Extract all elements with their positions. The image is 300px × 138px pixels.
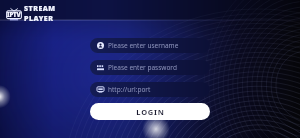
staticText: http://url:port [108,85,151,94]
button[interactable]: LOGIN [90,103,210,120]
button[interactable]: Server URL field [90,82,210,97]
staticText: Please enter username [108,41,179,50]
staticText: LOGIN [136,107,165,117]
staticText: Please enter password [108,63,177,72]
button[interactable]: Username field [90,38,210,53]
staticText: STREAM [24,4,56,14]
button[interactable]: Password field [90,60,210,75]
button[interactable]: IPTV [5,3,57,25]
staticText: IPTV [7,11,21,19]
staticText: PLAYER [24,14,54,24]
